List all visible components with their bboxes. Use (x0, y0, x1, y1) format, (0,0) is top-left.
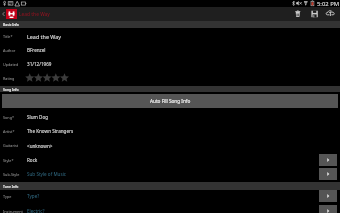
staticText: Instrument (3, 209, 27, 213)
staticText: BFrenzel (27, 47, 46, 53)
button[interactable]: Updated (0, 57, 340, 71)
staticText: Updated (3, 62, 27, 67)
button[interactable]: Instrument (0, 204, 340, 213)
staticText: Style* (3, 158, 27, 163)
button[interactable]: Choose Type (319, 190, 337, 202)
staticText: Type? (27, 193, 40, 199)
staticText: Rock (27, 157, 38, 163)
button[interactable]: Song* (0, 110, 340, 124)
staticText: Electric? (27, 208, 45, 213)
button[interactable]: Rating (0, 71, 340, 85)
staticText: The Known Strangers (27, 128, 74, 134)
staticText: Tune Info (3, 184, 19, 189)
staticText: 31/12/1969 (27, 61, 52, 67)
staticText: Rating (3, 76, 25, 81)
staticText: Lead the Way (19, 11, 50, 18)
button[interactable]: Navigate up (0, 7, 6, 21)
staticText: Type (3, 194, 27, 199)
button[interactable]: Artist* (0, 124, 340, 138)
button[interactable]: Style* (0, 153, 340, 167)
staticText: Slum Dog (27, 114, 48, 120)
button[interactable]: Choose Style* (319, 154, 337, 166)
button[interactable]: Save (306, 7, 323, 21)
staticText: Lead the Way (27, 33, 62, 40)
button[interactable]: Upload to cloud (322, 7, 340, 21)
staticText: Guitarist (3, 143, 27, 148)
staticText: Auto Fill Song Info (150, 98, 191, 104)
button[interactable]: Author (0, 43, 340, 57)
staticText: Sub-Style (3, 172, 27, 177)
staticText: Artist* (3, 129, 27, 134)
staticText: Song Info (3, 87, 19, 92)
staticText: Sub Style of Music (27, 171, 67, 177)
button[interactable]: Choose Instrument (319, 205, 337, 213)
button[interactable]: Type (0, 189, 340, 203)
button[interactable]: Choose Sub-Style (319, 168, 337, 180)
button[interactable]: Guitarist (0, 138, 340, 153)
staticText: Basic Info (3, 22, 19, 27)
staticText: <unknown> (27, 143, 53, 149)
staticText: 5:02 PM (317, 0, 340, 7)
button[interactable]: Title* (0, 29, 340, 43)
button[interactable]: Delete (289, 7, 306, 21)
button[interactable]: Auto Fill Song Info (2, 94, 338, 108)
staticText: Author (3, 48, 27, 53)
button[interactable]: Sub-Style (0, 167, 340, 181)
staticText: Title* (3, 34, 27, 39)
staticText: Song* (3, 115, 27, 120)
